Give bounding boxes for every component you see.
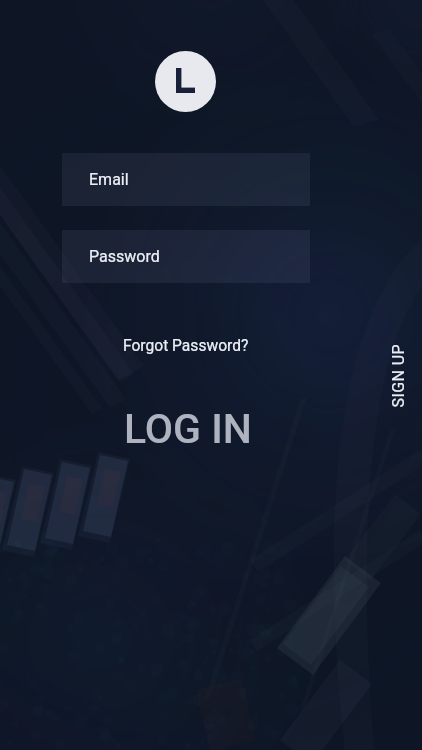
staticText: Password [89,247,160,266]
button[interactable]: SIGN UP [366,366,422,385]
button[interactable]: LOG IN [124,405,252,453]
button[interactable]: Email [62,153,310,206]
button[interactable]: App logo [155,51,216,112]
staticText: LOG IN [124,405,252,453]
staticText: Forgot Password? [123,337,249,355]
button[interactable]: Password [62,230,310,283]
staticText: Email [89,170,129,189]
staticText: SIGN UP [388,343,407,407]
button[interactable]: Forgot Password? [123,337,249,355]
